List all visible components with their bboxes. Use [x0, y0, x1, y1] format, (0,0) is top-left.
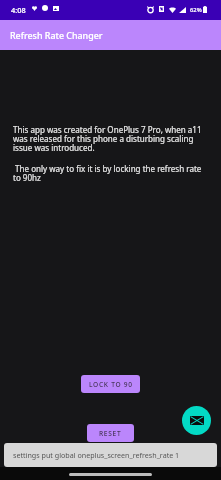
- staticText: settings put global oneplus_screen_refre…: [13, 450, 180, 460]
- staticText: 4:08: [11, 5, 26, 15]
- staticText: This app was created for OnePlus 7 Pro, …: [13, 124, 208, 154]
- button[interactable]: Refresh Rate Changer: [0, 20, 221, 50]
- staticText: Refresh Rate Changer: [10, 29, 103, 41]
- button[interactable]: Send email: [182, 406, 211, 435]
- button[interactable]: RESET: [87, 424, 134, 442]
- staticText: RESET: [99, 429, 122, 438]
- button[interactable]: settings put global oneplus_screen_refre…: [4, 443, 217, 467]
- staticText: The only way to fix it is by locking the…: [13, 163, 208, 184]
- button[interactable]: LOCK TO 90: [81, 375, 140, 393]
- staticText: LOCK TO 90: [89, 380, 133, 389]
- staticText: 62%: [190, 6, 202, 14]
